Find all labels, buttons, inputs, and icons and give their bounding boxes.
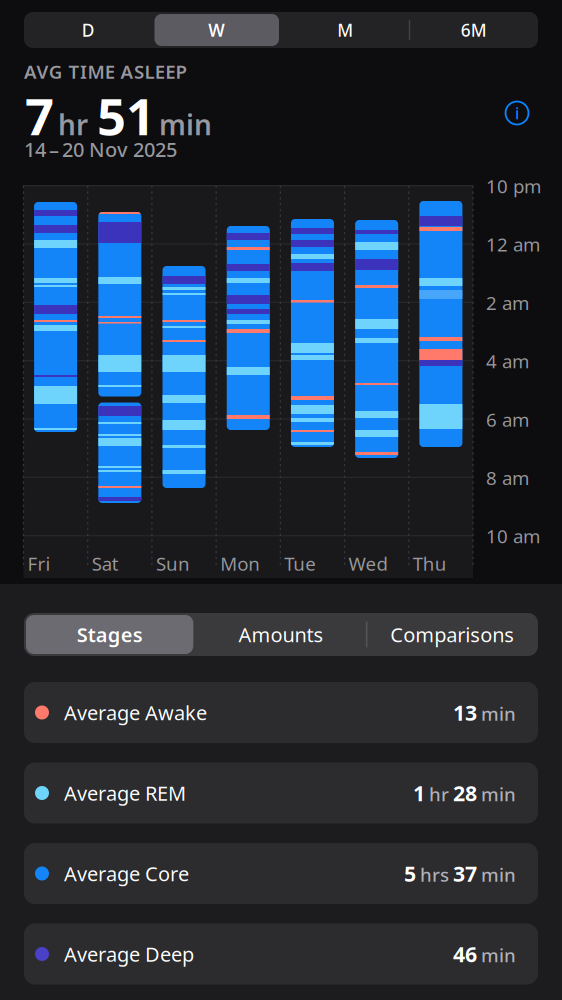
staticText: M bbox=[337, 18, 353, 41]
staticText: min bbox=[481, 701, 516, 726]
staticText: Amounts bbox=[238, 621, 323, 648]
button[interactable]: About Sleep bbox=[502, 98, 532, 128]
button[interactable]: W bbox=[152, 12, 281, 48]
staticText: 12 am bbox=[486, 232, 540, 257]
staticText: hr bbox=[429, 782, 449, 806]
staticText: min bbox=[481, 862, 516, 887]
staticText: Average Deep bbox=[64, 941, 194, 967]
staticText: 51 bbox=[97, 82, 155, 149]
staticText: Wed bbox=[349, 551, 388, 576]
staticText: 28 bbox=[453, 779, 477, 807]
staticText: D bbox=[82, 18, 95, 41]
staticText: min bbox=[481, 943, 516, 967]
staticText: W bbox=[208, 18, 225, 41]
staticText: AVG TIME ASLEEP bbox=[24, 59, 187, 84]
staticText: 46 bbox=[453, 940, 477, 968]
staticText: Stages bbox=[77, 621, 143, 648]
staticText: 7 bbox=[25, 82, 54, 149]
staticText: 14 – 20 Nov 2025 bbox=[24, 136, 177, 163]
staticText: Average Awake bbox=[64, 699, 207, 726]
staticText: Mon bbox=[220, 551, 260, 576]
button[interactable]: 6M bbox=[409, 12, 538, 48]
button[interactable]: M bbox=[281, 12, 409, 48]
staticText: min bbox=[481, 782, 516, 806]
staticText: hr bbox=[58, 106, 88, 143]
staticText: 37 bbox=[453, 859, 477, 888]
button[interactable]: D bbox=[24, 12, 152, 48]
staticText: Comparisons bbox=[390, 621, 514, 648]
button[interactable]: Amounts bbox=[195, 613, 367, 656]
staticText: Fri bbox=[27, 551, 50, 576]
staticText: 2 am bbox=[486, 290, 529, 315]
button[interactable]: Stages bbox=[24, 613, 195, 656]
staticText: Thu bbox=[413, 551, 447, 576]
staticText: Sat bbox=[92, 551, 119, 576]
staticText: 4 am bbox=[486, 349, 529, 373]
staticText: 6 am bbox=[486, 407, 529, 432]
staticText: 13 bbox=[453, 698, 477, 727]
staticText: hrs bbox=[420, 862, 449, 887]
staticText: 6M bbox=[461, 18, 487, 41]
staticText: min bbox=[159, 106, 212, 143]
staticText: i bbox=[515, 102, 519, 124]
staticText: Average REM bbox=[64, 780, 186, 806]
staticText: 10 pm bbox=[486, 174, 541, 198]
staticText: Sun bbox=[156, 551, 190, 576]
staticText: Tue bbox=[284, 551, 316, 576]
staticText: Average Core bbox=[64, 860, 189, 887]
staticText: 8 am bbox=[486, 465, 529, 490]
staticText: 1 bbox=[413, 779, 425, 807]
staticText: 10 am bbox=[486, 524, 540, 548]
staticText: 5 bbox=[404, 859, 416, 888]
button[interactable]: Comparisons bbox=[367, 613, 538, 656]
